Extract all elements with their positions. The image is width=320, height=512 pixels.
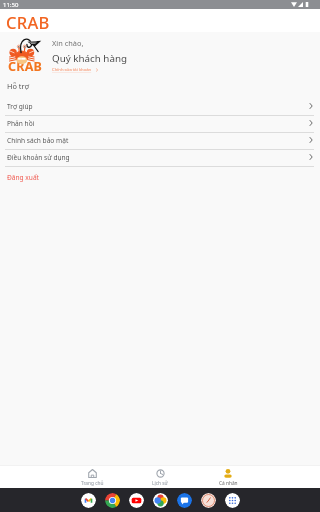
staticText: CRAB (8, 58, 42, 75)
staticText: 11:50 (3, 1, 19, 9)
staticText: Cá nhân (219, 480, 238, 487)
button[interactable]: Gmail (81, 493, 96, 508)
staticText: Chỉnh sửa tài khoản (52, 67, 92, 73)
button[interactable]: Cá nhân (194, 466, 262, 488)
staticText: Trợ giúp (7, 102, 33, 111)
staticText: CRAB (6, 11, 50, 33)
button[interactable]: Clock (201, 493, 216, 508)
button[interactable]: YouTube (129, 493, 144, 508)
button[interactable]: Chính sách bảo mật (0, 133, 320, 149)
staticText: Chính sách bảo mật (7, 136, 69, 145)
button[interactable]: Messages (177, 493, 192, 508)
button[interactable]: Trợ giúp (0, 99, 320, 115)
button[interactable]: Đăng xuất (0, 167, 320, 184)
button[interactable]: Điều khoản sử dụng (0, 150, 320, 166)
staticText: Quý khách hàng (52, 52, 127, 65)
button[interactable]: Lịch sử (126, 466, 194, 488)
staticText: Xin chào, (52, 38, 84, 48)
button[interactable]: Phản hồi (0, 116, 320, 132)
staticText: Phản hồi (7, 119, 35, 128)
staticText: Đăng xuất (7, 173, 39, 182)
button[interactable]: All apps (225, 493, 240, 508)
button[interactable]: Chỉnh sửa tài khoản (52, 67, 99, 73)
button[interactable]: Photos (153, 493, 168, 508)
staticText: Điều khoản sử dụng (7, 153, 70, 162)
staticText: Lịch sử (152, 480, 168, 487)
button[interactable]: Chrome (105, 493, 120, 508)
staticText: Trang chủ (81, 480, 104, 487)
staticText: Hỗ trợ (7, 81, 29, 91)
button[interactable]: Trang chủ (58, 466, 126, 488)
